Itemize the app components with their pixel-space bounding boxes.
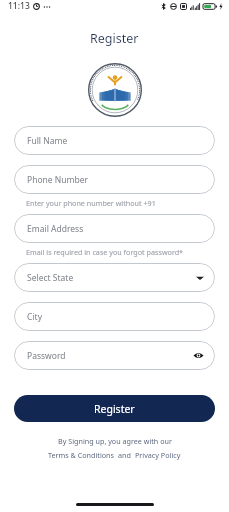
button[interactable]: City xyxy=(14,302,215,331)
staticText: Phone Number xyxy=(27,174,204,186)
button[interactable]: Privacy Policy xyxy=(135,450,181,460)
staticText: 11:13 xyxy=(8,0,30,12)
staticText: Email is required in case you forgot pas… xyxy=(26,247,184,257)
staticText: Password xyxy=(27,350,193,362)
button[interactable]: Phone Number xyxy=(14,165,215,194)
button[interactable]: Email Address xyxy=(14,214,215,243)
staticText: Select State xyxy=(27,272,196,284)
staticText: Register xyxy=(90,30,139,47)
staticText: Email Address xyxy=(27,223,204,235)
button[interactable]: Register xyxy=(14,395,215,422)
button[interactable]: Select State xyxy=(14,263,215,292)
staticText: By Signing up, you agree with our xyxy=(58,436,172,446)
button[interactable]: Full Name xyxy=(14,126,215,155)
staticText: Enter your phone number without +91 xyxy=(26,198,156,208)
other: Show password xyxy=(193,350,204,361)
button[interactable]: Password xyxy=(14,341,215,370)
staticText: Terms & Conditions xyxy=(48,450,114,460)
staticText: City xyxy=(27,311,204,323)
staticText: and xyxy=(118,450,131,460)
other: Select state xyxy=(196,274,204,282)
staticText: Full Name xyxy=(27,135,204,147)
button[interactable]: Terms & Conditions xyxy=(48,450,114,460)
staticText: Privacy Policy xyxy=(135,450,181,460)
staticText: Register xyxy=(94,402,135,416)
